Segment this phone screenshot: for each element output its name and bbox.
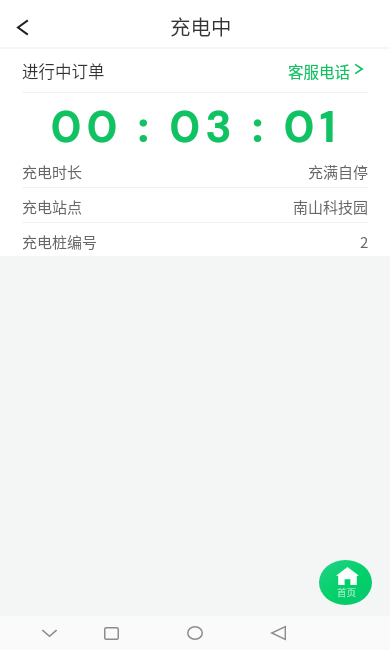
button[interactable]: 充电时长 <box>0 153 390 187</box>
button[interactable]: 充电桩编号 <box>0 223 390 256</box>
button[interactable]: Recent apps <box>91 616 131 650</box>
staticText: 客服电话 <box>288 60 351 82</box>
button[interactable]: Back <box>2 7 42 47</box>
staticText: 00 : 03 : 01 <box>50 98 341 155</box>
button[interactable]: 客服电话 <box>288 60 369 82</box>
staticText: 南山科技园 <box>293 196 369 218</box>
button[interactable]: Back <box>258 616 298 650</box>
staticText: 首页 <box>337 585 357 599</box>
staticText: 充电中 <box>170 11 232 41</box>
staticText: 充满自停 <box>308 161 369 183</box>
staticText: 进行中订单 <box>22 59 105 83</box>
staticText: 充电站点 <box>22 196 83 218</box>
staticText: 2 <box>360 231 369 253</box>
button[interactable]: 充电站点 <box>0 188 390 222</box>
staticText: 充电时长 <box>22 161 83 183</box>
button[interactable]: Home <box>175 616 215 650</box>
button[interactable]: 首页 Home <box>319 560 372 605</box>
button[interactable]: Back <box>29 616 69 650</box>
staticText: 充电桩编号 <box>22 231 98 253</box>
